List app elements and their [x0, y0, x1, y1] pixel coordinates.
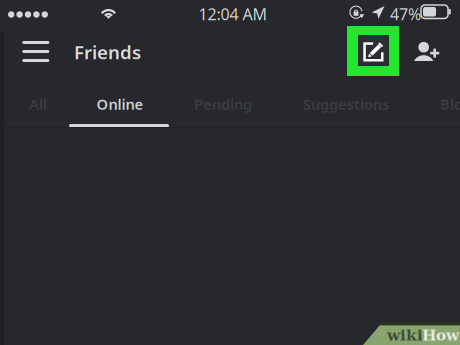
button[interactable]: New direct message [347, 26, 399, 76]
staticText: Suggestions [303, 94, 389, 114]
staticText: 47% [390, 3, 421, 25]
button[interactable]: Suggestions [286, 84, 406, 124]
button[interactable]: Online [70, 84, 170, 124]
button[interactable]: Blocked [440, 84, 460, 124]
staticText: All [29, 94, 47, 114]
staticText: Pending [194, 94, 252, 114]
staticText: How [422, 326, 459, 344]
button[interactable]: Pending [173, 84, 273, 124]
button[interactable]: Open server list [11, 35, 60, 75]
staticText: Friends [74, 40, 141, 64]
button[interactable]: All [8, 84, 68, 124]
staticText: wiki [387, 326, 423, 344]
staticText: 12:04 AM [198, 3, 267, 25]
button[interactable]: Add friend [414, 42, 454, 82]
button[interactable]: Friends [74, 37, 154, 67]
staticText: Blocked [440, 94, 460, 114]
staticText: Online [96, 94, 143, 114]
